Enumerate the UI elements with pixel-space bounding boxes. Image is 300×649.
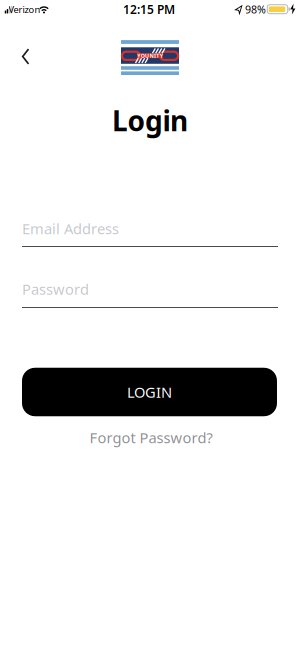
button[interactable]: LOGIN	[22, 368, 277, 416]
button[interactable]: Password	[22, 280, 278, 308]
staticText: Password	[22, 279, 89, 299]
staticText: LOGIN	[127, 382, 172, 402]
staticText: 12:15 PM	[123, 1, 175, 17]
staticText: YOUNITY	[137, 52, 163, 59]
staticText: Verizon	[8, 3, 40, 15]
button[interactable]	[1, 34, 45, 78]
button[interactable]: Email Address	[22, 219, 278, 247]
button[interactable]: Forgot Password?	[89, 428, 212, 447]
staticText: Email Address	[22, 219, 119, 238]
staticText: Login	[112, 102, 188, 139]
staticText: 98%	[245, 2, 266, 16]
staticText: Forgot Password?	[89, 428, 212, 447]
